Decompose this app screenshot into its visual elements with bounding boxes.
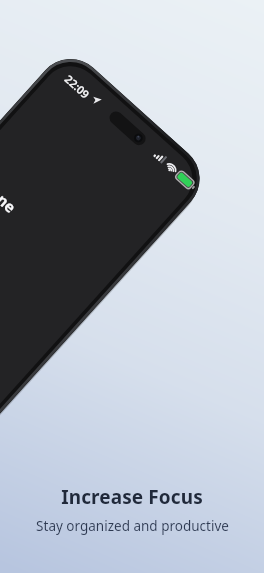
staticText: Stay organized and productive — [36, 517, 229, 535]
button[interactable]: Increase Focus — [0, 484, 264, 535]
staticText: Increase Focus — [61, 484, 203, 510]
